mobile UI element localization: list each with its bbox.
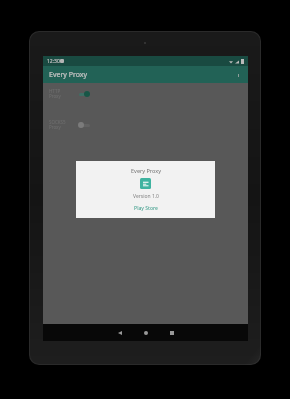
staticText: Play Store bbox=[134, 205, 158, 212]
button[interactable]: Home bbox=[133, 324, 159, 341]
staticText: SOCKS5 Proxy bbox=[49, 119, 71, 131]
button[interactable]: SOCKS5 Proxy bbox=[43, 114, 248, 136]
button[interactable]: HTTP Proxy bbox=[43, 83, 248, 105]
button[interactable]: Back bbox=[107, 324, 133, 341]
button[interactable]: Play Store bbox=[130, 204, 162, 213]
staticText: Every Proxy bbox=[49, 70, 88, 80]
button[interactable]: Recent apps bbox=[159, 324, 185, 341]
staticText: HTTP Proxy bbox=[49, 88, 71, 100]
staticText: 12:30 bbox=[47, 58, 60, 65]
staticText: Version 1.0 bbox=[133, 193, 159, 200]
button[interactable]: More options bbox=[233, 70, 243, 80]
staticText: Every Proxy bbox=[131, 167, 161, 174]
